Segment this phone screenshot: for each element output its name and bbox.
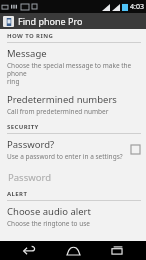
staticText: Choose the ringtone to use	[7, 219, 90, 228]
staticText: Password	[8, 171, 51, 184]
button[interactable]: Password	[0, 169, 146, 186]
staticText: 4:03	[130, 2, 144, 12]
staticText: Choose the special message to make the p…	[7, 61, 140, 86]
staticText: Password?	[7, 138, 55, 151]
button[interactable]: Back	[14, 241, 44, 260]
staticText: SECURITY	[7, 123, 39, 131]
button[interactable]: Choose audio alert	[0, 201, 146, 231]
button[interactable]: Password?	[0, 134, 146, 164]
staticText: ALERT	[7, 190, 28, 198]
button[interactable]: Home	[58, 241, 88, 260]
staticText: Message	[7, 47, 47, 60]
staticText: Use a password to enter in a settings?	[7, 152, 123, 161]
staticText: Find phone Pro	[18, 15, 83, 27]
staticText: Predetermined numbers	[7, 93, 117, 106]
staticText: Choose audio alert	[7, 205, 91, 218]
button[interactable]: Recent apps	[102, 241, 132, 260]
button[interactable]: Message	[0, 43, 146, 89]
button[interactable]: Predetermined numbers	[0, 89, 146, 119]
staticText: HOW TO RING	[7, 32, 54, 40]
staticText: Call from predetermined number	[7, 107, 109, 116]
